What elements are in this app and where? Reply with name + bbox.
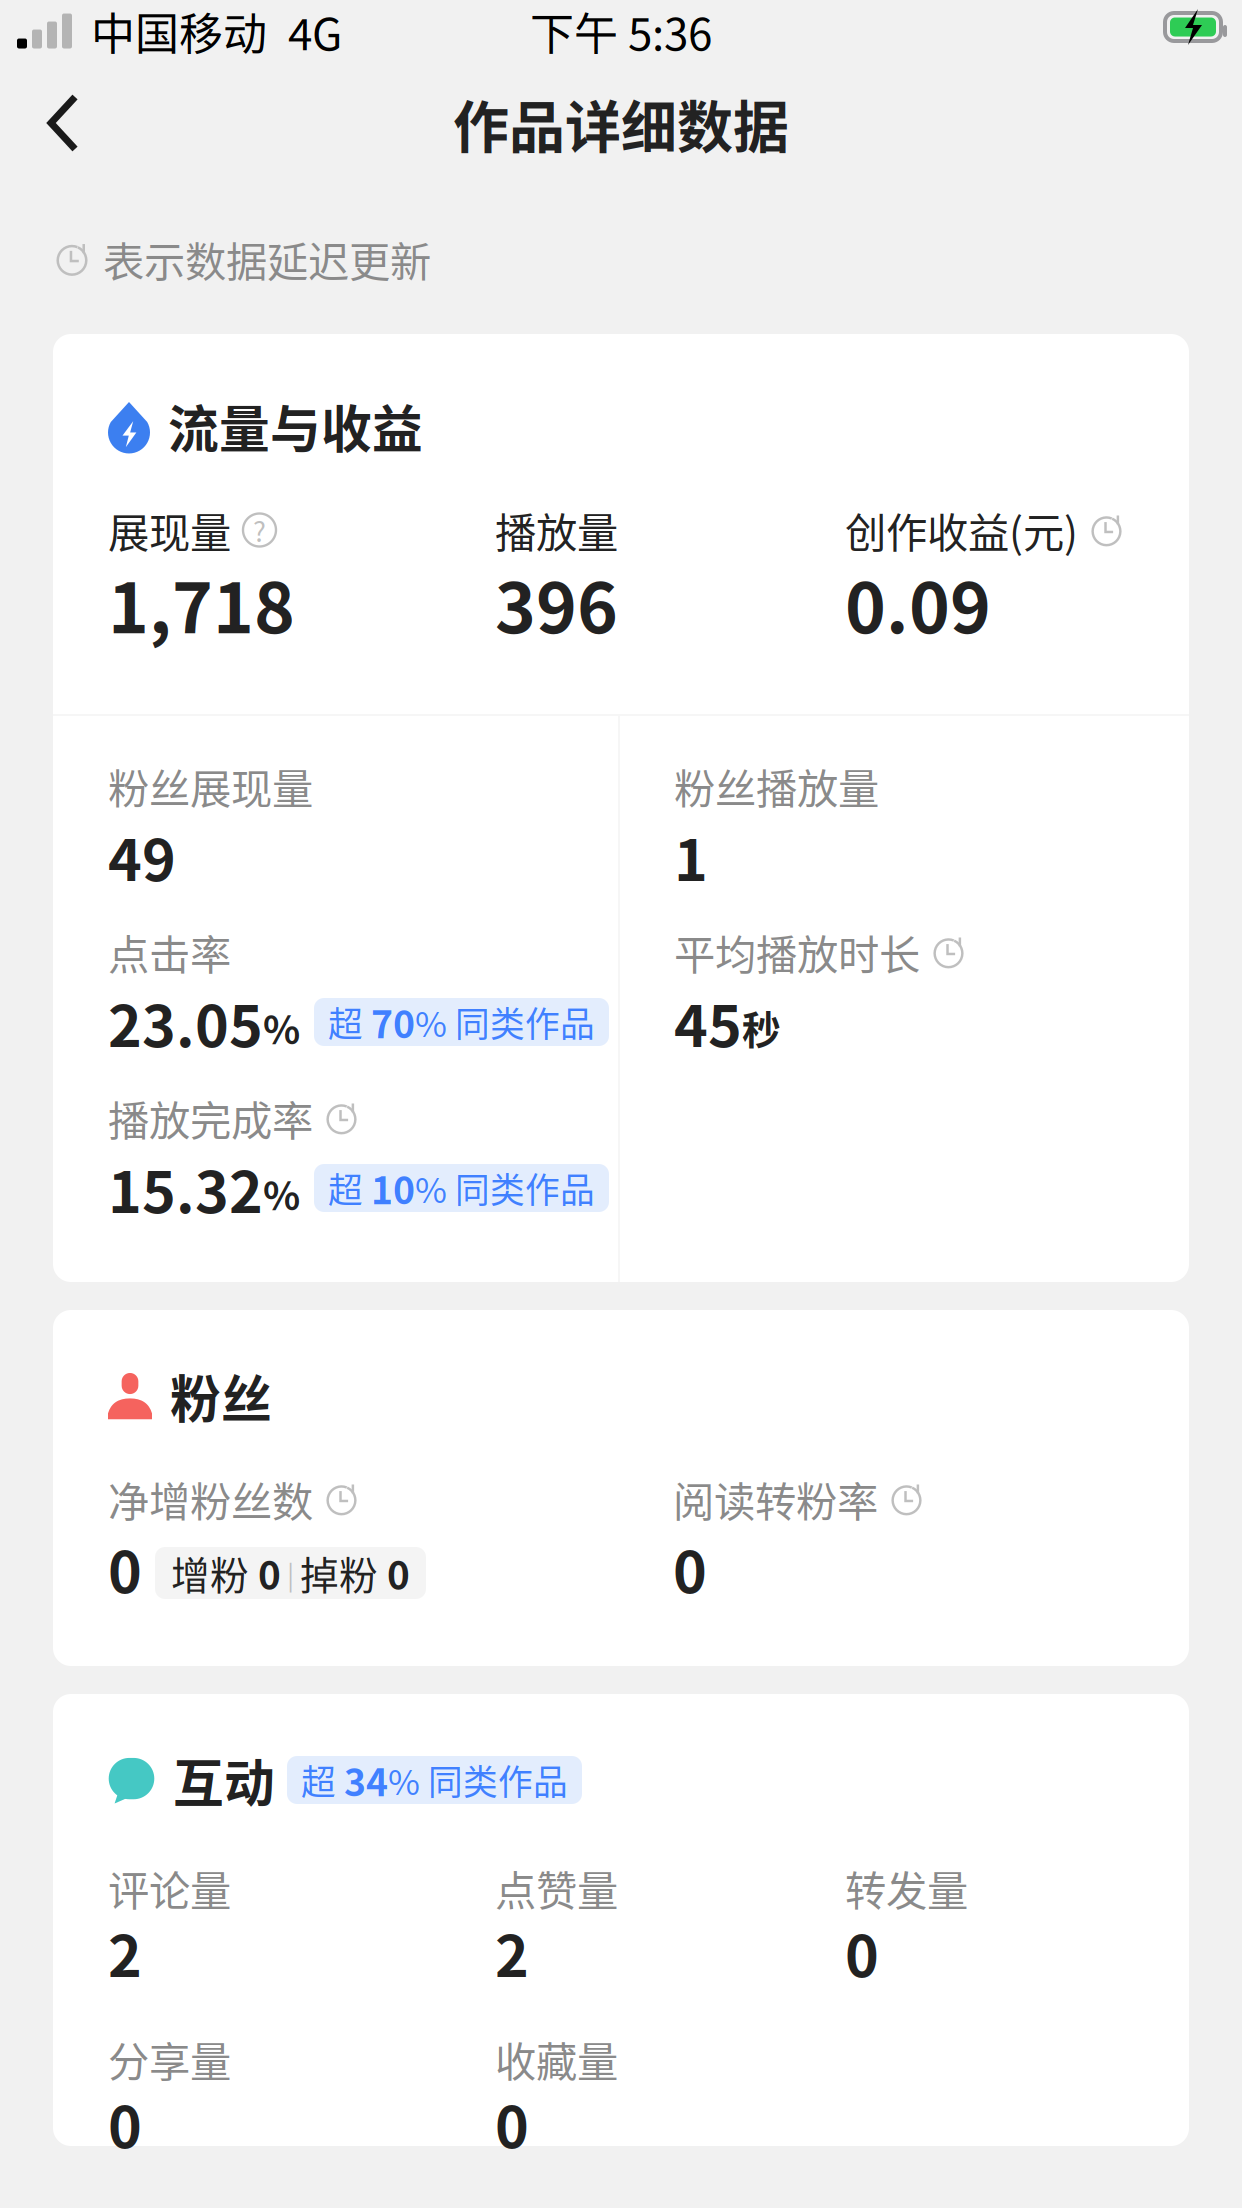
staticText: % 同类作品 xyxy=(415,1163,595,1213)
staticText: 平均播放时长 xyxy=(674,922,920,982)
staticText: 23.05 xyxy=(108,980,263,1063)
staticText: 点赞量 xyxy=(495,1858,618,1918)
staticText: 展现量 xyxy=(108,500,231,560)
staticText: 超 xyxy=(301,1755,344,1805)
staticText: 0 xyxy=(258,1545,281,1601)
staticText: 创作收益(元) xyxy=(845,500,1078,560)
staticText: 45 xyxy=(674,980,742,1063)
staticText: % xyxy=(263,1165,300,1221)
staticText: 2 xyxy=(108,1910,142,1993)
staticText: ? xyxy=(253,510,266,550)
staticText: 34 xyxy=(344,1753,388,1807)
staticText: 4G xyxy=(288,0,342,63)
staticText: 1 xyxy=(674,814,708,897)
staticText: 超 xyxy=(328,1163,371,1213)
staticText: % xyxy=(263,999,300,1055)
staticText: 阅读转粉率 xyxy=(673,1469,878,1529)
staticText: 396 xyxy=(495,553,618,653)
staticText: 15.32 xyxy=(108,1146,263,1229)
staticText: 1,718 xyxy=(108,553,295,653)
staticText: 超 xyxy=(328,997,371,1047)
staticText: | xyxy=(281,1554,300,1592)
staticText: 0 xyxy=(673,1526,707,1609)
staticText: 10 xyxy=(371,1161,415,1215)
staticText: 表示数据延迟更新 xyxy=(103,229,431,289)
staticText: % 同类作品 xyxy=(415,997,595,1047)
staticText: 增粉 xyxy=(171,1545,258,1601)
staticText: 收藏量 xyxy=(495,2029,618,2089)
staticText: 0 xyxy=(387,1545,410,1601)
staticText: 下午 5:36 xyxy=(530,0,712,63)
staticText: 转发量 xyxy=(845,1858,968,1918)
staticText: 70 xyxy=(371,995,415,1049)
staticText: 评论量 xyxy=(108,1858,231,1918)
staticText: 净增粉丝数 xyxy=(108,1469,313,1529)
button[interactable]: Back xyxy=(0,69,116,177)
staticText: 2 xyxy=(495,1910,529,1993)
staticText: 粉丝播放量 xyxy=(674,756,879,816)
staticText: 互动 xyxy=(173,1743,275,1817)
staticText: 0 xyxy=(495,2081,529,2164)
staticText: 中国移动 xyxy=(91,0,267,63)
staticText: 0 xyxy=(845,1910,879,1993)
staticText: 49 xyxy=(108,814,176,897)
staticText: 作品详细数据 xyxy=(453,82,789,164)
staticText: 流量与收益 xyxy=(168,389,423,463)
staticText: 播放完成率 xyxy=(108,1088,313,1148)
staticText: 掉粉 xyxy=(300,1545,387,1601)
staticText: 点击率 xyxy=(108,922,231,982)
staticText: 0.09 xyxy=(845,553,991,653)
staticText: 播放量 xyxy=(495,500,618,560)
staticText: 0 xyxy=(108,2081,142,2164)
staticText: % 同类作品 xyxy=(388,1755,568,1805)
staticText: 分享量 xyxy=(108,2029,231,2089)
staticText: 秒 xyxy=(742,999,781,1055)
staticText: 粉丝展现量 xyxy=(108,756,313,816)
staticText: 粉丝 xyxy=(170,1359,272,1433)
staticText: 0 xyxy=(108,1526,142,1609)
